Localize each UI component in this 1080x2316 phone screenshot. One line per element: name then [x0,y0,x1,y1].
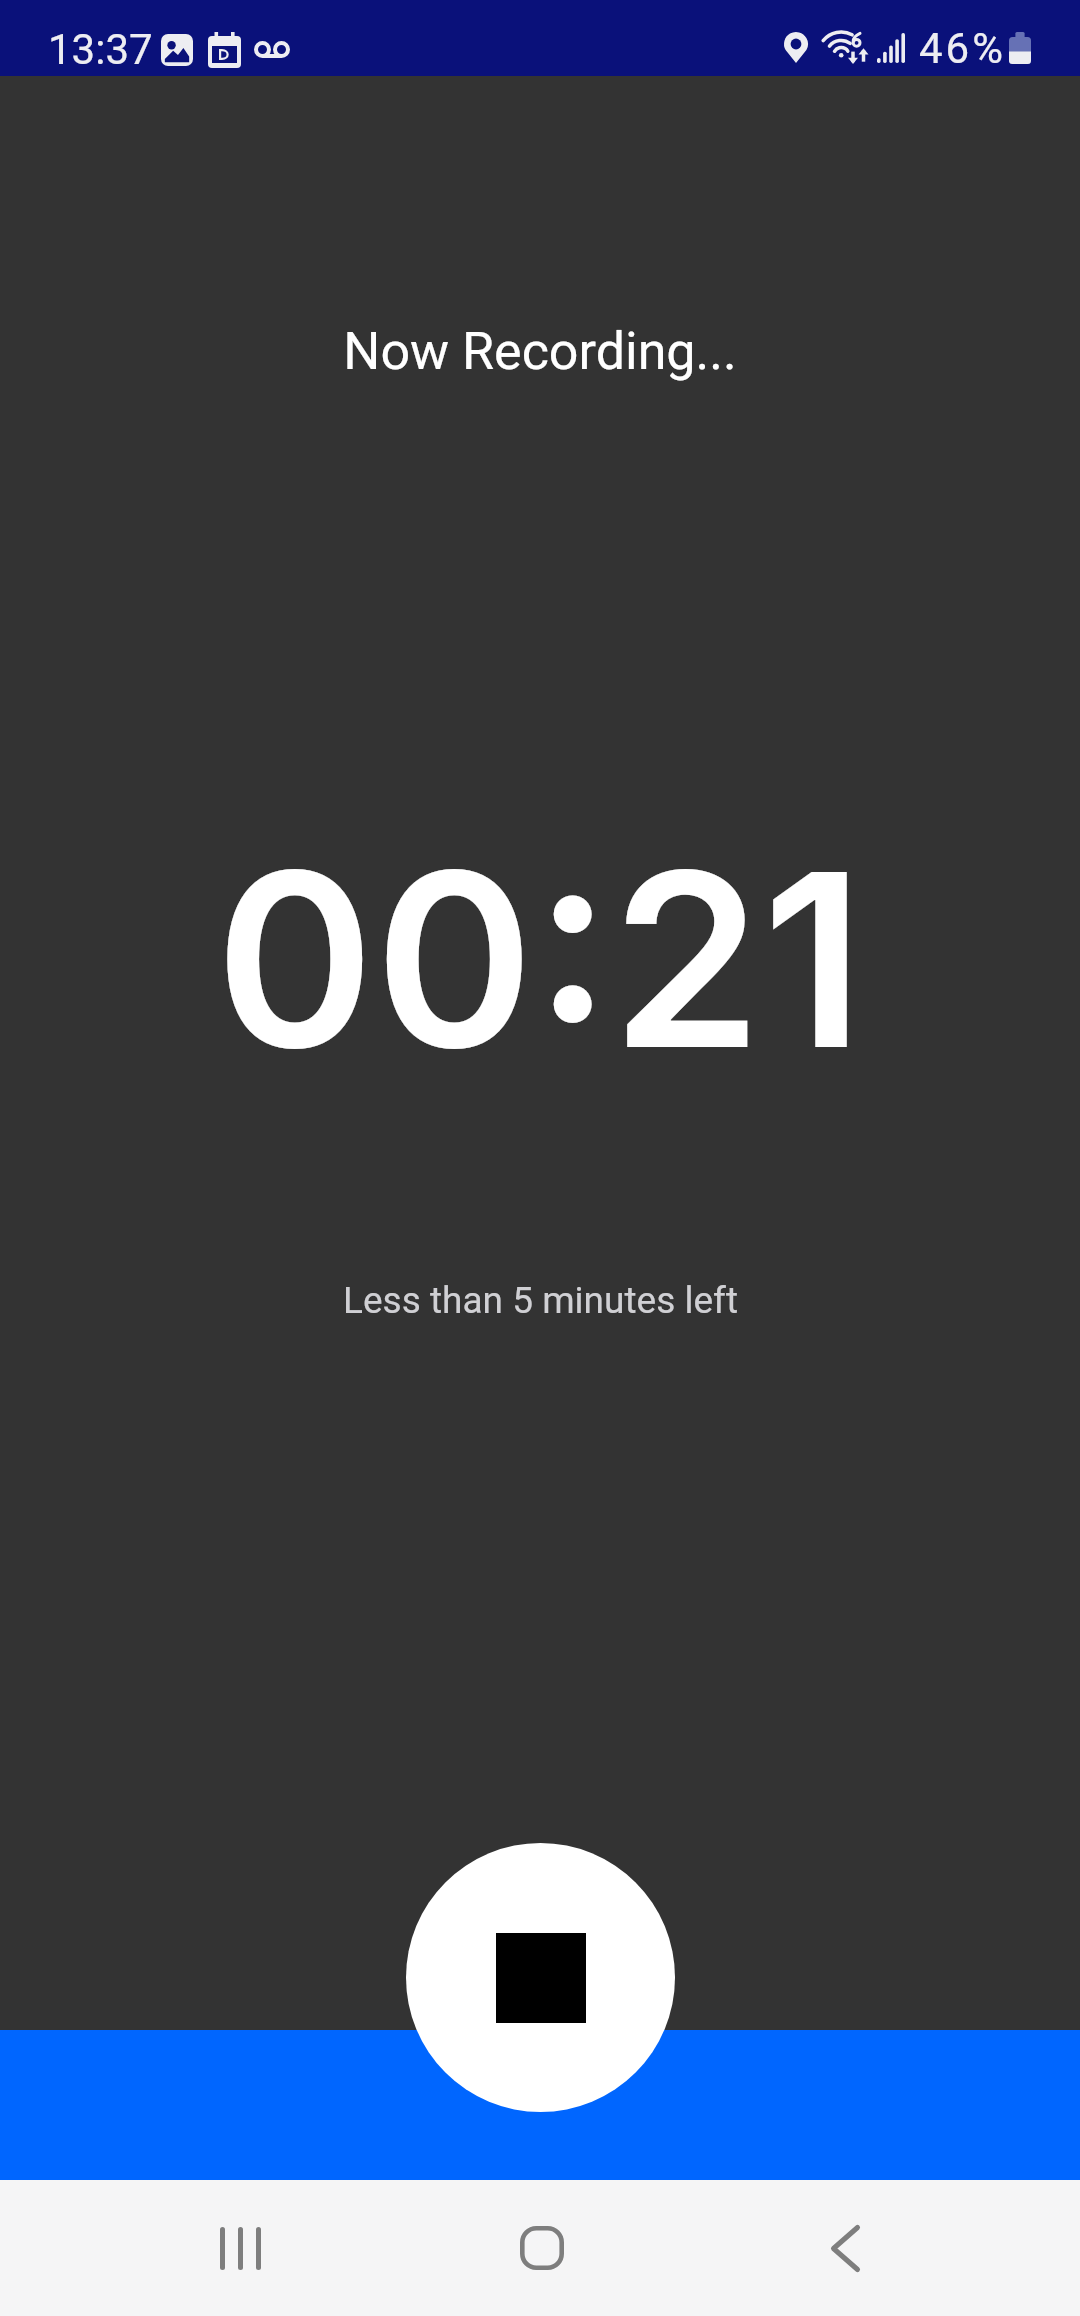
button[interactable]: Recent apps [170,2180,310,2316]
button[interactable]: Home [472,2180,612,2316]
staticText: 00:21 [215,814,865,1106]
button[interactable]: Back [775,2180,915,2316]
staticText: 46% [919,24,1006,73]
button[interactable]: Recording controls [0,2030,1080,2180]
staticText: Now Recording... [343,321,737,382]
staticText: 13:37 [48,25,153,74]
staticText: Less than 5 minutes left [343,1279,738,1322]
button[interactable]: Stop recording [406,1843,675,2112]
